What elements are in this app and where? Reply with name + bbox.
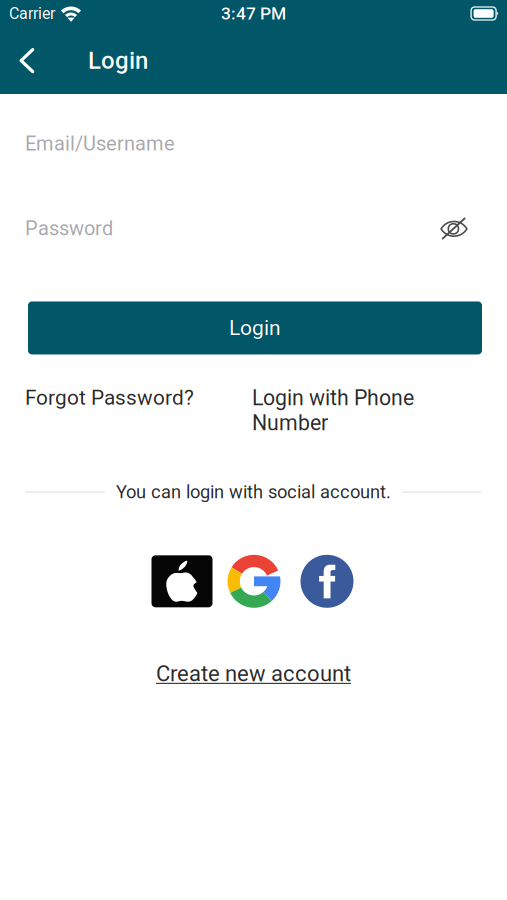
button[interactable]: Forgot Password? (25, 385, 194, 410)
staticText: Create new account (156, 661, 351, 687)
button[interactable]: Sign in with Google (227, 555, 280, 608)
staticText: Forgot Password? (25, 385, 194, 410)
staticText: Password (25, 217, 113, 240)
staticText: Login (88, 46, 148, 74)
button[interactable]: Login with Phone Number (252, 385, 418, 435)
staticText: Email/Username (25, 132, 175, 155)
staticText: 3:47 PM (221, 3, 286, 24)
staticText: You can login with social account. (116, 481, 391, 503)
button[interactable]: Show password (440, 216, 482, 240)
button[interactable]: Login (28, 301, 482, 354)
staticText: Login (229, 316, 281, 340)
button[interactable]: Create new account (156, 661, 351, 687)
staticText: Carrier (9, 4, 55, 23)
staticText: Login with Phone Number (252, 385, 414, 435)
button[interactable]: Back (5, 37, 49, 83)
button[interactable]: Sign in with Apple (151, 555, 212, 607)
button[interactable]: Sign in with Facebook (300, 555, 353, 608)
